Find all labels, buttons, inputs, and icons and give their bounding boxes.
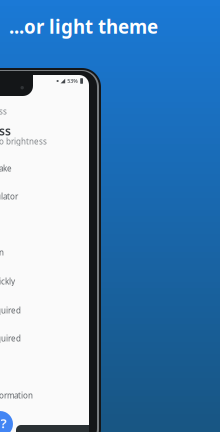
staticText: Lock quickly (0, 276, 15, 287)
staticText: Wireless (0, 106, 7, 117)
button[interactable]: Help (0, 411, 13, 432)
button[interactable]: Wireless (0, 106, 7, 117)
staticText: Auto brightness (0, 136, 47, 147)
button[interactable]: Auto brightness (0, 136, 47, 147)
staticText: PIN required (0, 305, 21, 316)
button[interactable]: PIN required (0, 333, 21, 344)
staticText: Screen on (0, 247, 4, 258)
staticText: Sleep / Wake (0, 163, 12, 174)
staticText: PIN required (0, 333, 21, 344)
button[interactable]: PIN required (0, 305, 21, 316)
staticText: Font calculator (0, 191, 18, 202)
button[interactable]: Screen on (0, 247, 4, 258)
staticText: 53% (67, 77, 78, 85)
button[interactable]: Lock quickly (0, 276, 15, 287)
staticText: Device information (0, 390, 33, 401)
staticText: ...or light theme (9, 14, 158, 39)
button[interactable]: Brightness (0, 123, 11, 139)
staticText: ? (0, 414, 6, 432)
button[interactable]: Sleep / Wake (0, 163, 12, 174)
button[interactable]: Device information (0, 390, 33, 401)
button[interactable]: Font calculator (0, 191, 18, 202)
staticText: Brightness (0, 123, 11, 139)
